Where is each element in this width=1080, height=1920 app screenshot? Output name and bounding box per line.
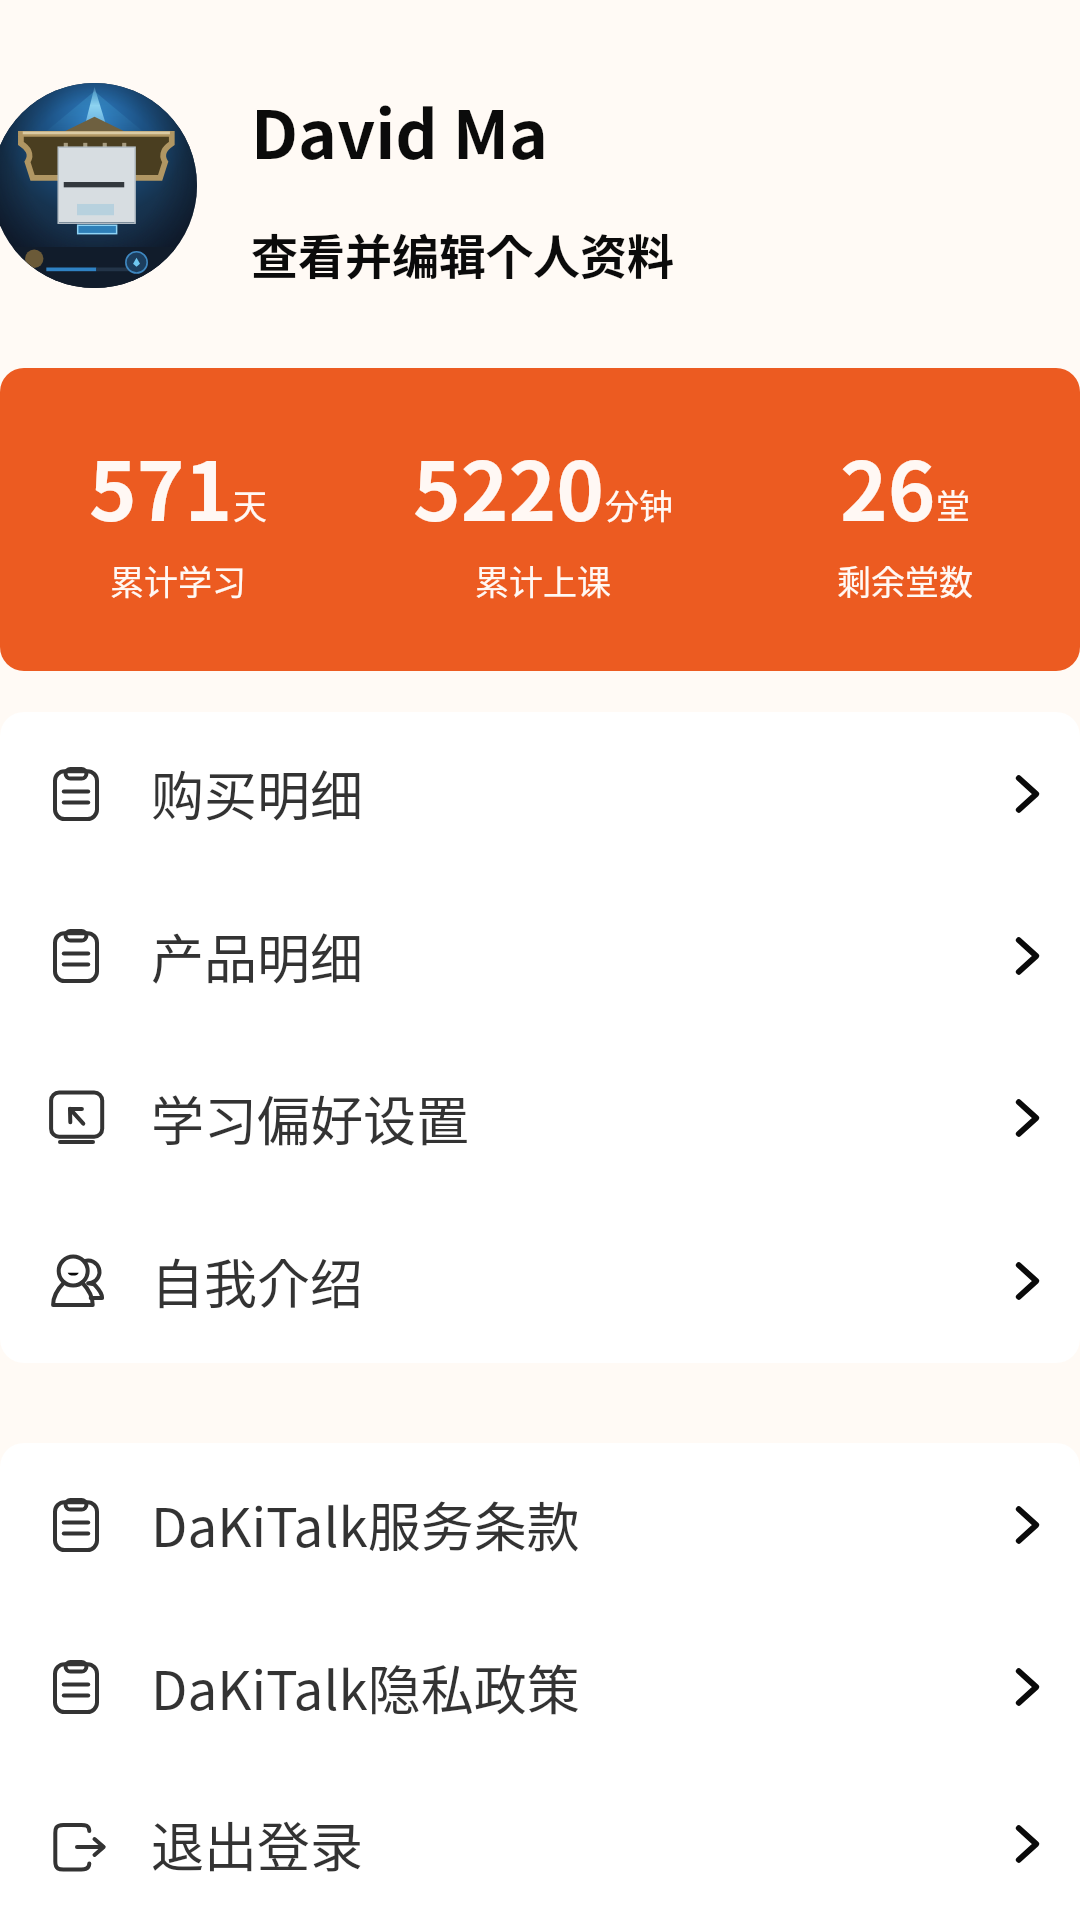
staticText: 累计学习 [110, 556, 246, 605]
staticText: 购买明细 [151, 755, 363, 832]
staticText: 剩余堂数 [837, 556, 973, 605]
staticText: 5220 [413, 427, 605, 544]
button[interactable]: DaKiTalk服务条款 [0, 1443, 1080, 1606]
staticText: 26 [840, 427, 936, 544]
other: Profile photo [0, 83, 197, 288]
staticText: 累计上课 [475, 556, 611, 605]
button[interactable]: 学习偏好设置 [0, 1037, 1080, 1199]
staticText: 自我介绍 [151, 1243, 363, 1320]
staticText: 查看并编辑个人资料 [251, 219, 674, 287]
button[interactable]: 产品明细 [0, 875, 1080, 1037]
button[interactable]: Profile photo [0, 0, 1080, 368]
staticText: 产品明细 [151, 918, 363, 995]
button[interactable]: 退出登录 [0, 1768, 1080, 1920]
button[interactable]: 自我介绍 [0, 1199, 1080, 1363]
staticText: David Ma [251, 82, 548, 178]
staticText: 分钟 [605, 480, 673, 529]
staticText: 571 [89, 427, 233, 544]
staticText: 堂 [936, 480, 970, 529]
staticText: 学习偏好设置 [151, 1080, 469, 1157]
button[interactable]: 购买明细 [0, 712, 1080, 875]
staticText: 退出登录 [151, 1806, 363, 1883]
staticText: DaKiTalk隐私政策 [151, 1649, 580, 1726]
staticText: 天 [233, 480, 267, 529]
staticText: DaKiTalk服务条款 [151, 1486, 580, 1563]
button[interactable]: DaKiTalk隐私政策 [0, 1606, 1080, 1768]
